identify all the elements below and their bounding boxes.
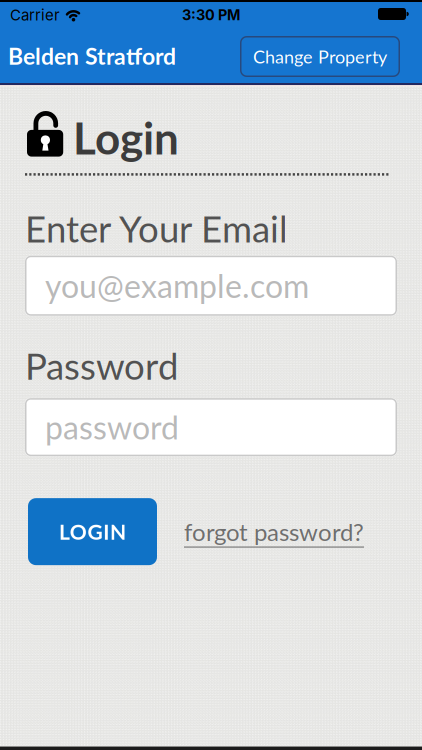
staticText: Belden Stratford (8, 42, 176, 70)
button[interactable]: Change Property (240, 36, 400, 77)
staticText: 3:30 PM (182, 6, 240, 24)
staticText: LOGIN (59, 519, 126, 544)
staticText: Carrier (10, 6, 60, 24)
staticText: Enter Your Email (25, 206, 288, 250)
staticText: forgot password? (184, 517, 364, 546)
staticText: Password (25, 344, 178, 388)
staticText: password (45, 408, 179, 446)
staticText: you@example.com (45, 266, 309, 305)
button[interactable]: forgot password? (184, 517, 364, 546)
staticText: Change Property (253, 46, 387, 67)
button[interactable]: LOGIN (28, 498, 157, 565)
staticText: Login (73, 111, 179, 164)
